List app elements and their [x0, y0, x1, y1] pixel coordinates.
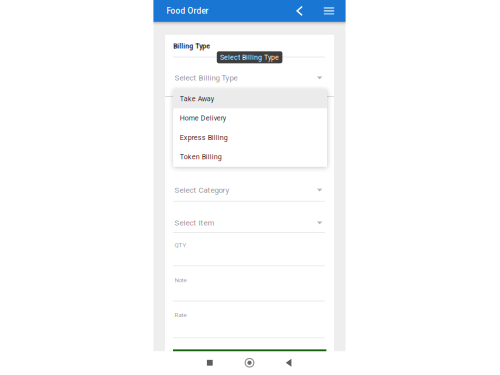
staticText: Express Billing [180, 133, 228, 142]
staticText: Select Category [174, 185, 229, 195]
button[interactable]: Take Away [173, 89, 327, 108]
button[interactable]: Select Item [173, 202, 325, 232]
staticText: Select Item [174, 218, 214, 227]
button[interactable]: Select Category [173, 170, 325, 201]
button[interactable]: Home Delivery [173, 108, 327, 128]
button[interactable]: Recents [198, 353, 222, 373]
button[interactable]: Back [290, 0, 310, 22]
staticText: QTY [174, 242, 186, 249]
staticText: Token Billing [180, 153, 222, 161]
staticText: Select Billing Type [174, 73, 237, 82]
staticText: Select Billing Type [220, 53, 279, 61]
staticText: Take Away [180, 95, 214, 103]
button[interactable]: Back [277, 353, 301, 373]
button[interactable]: Token Billing [173, 147, 327, 167]
staticText: Food Order [166, 6, 208, 16]
staticText: Note [174, 277, 186, 284]
button[interactable]: Express Billing [173, 128, 327, 147]
staticText: Home Delivery [180, 114, 226, 122]
button[interactable]: Note [173, 266, 325, 301]
button[interactable]: Home [237, 353, 261, 373]
button[interactable]: Menu [319, 0, 339, 22]
button[interactable]: Select Billing Type [173, 57, 325, 96]
button[interactable]: QTY [173, 233, 325, 265]
button[interactable]: Rate [173, 301, 325, 337]
staticText: Billing Type [173, 42, 210, 50]
staticText: Rate [174, 311, 186, 318]
